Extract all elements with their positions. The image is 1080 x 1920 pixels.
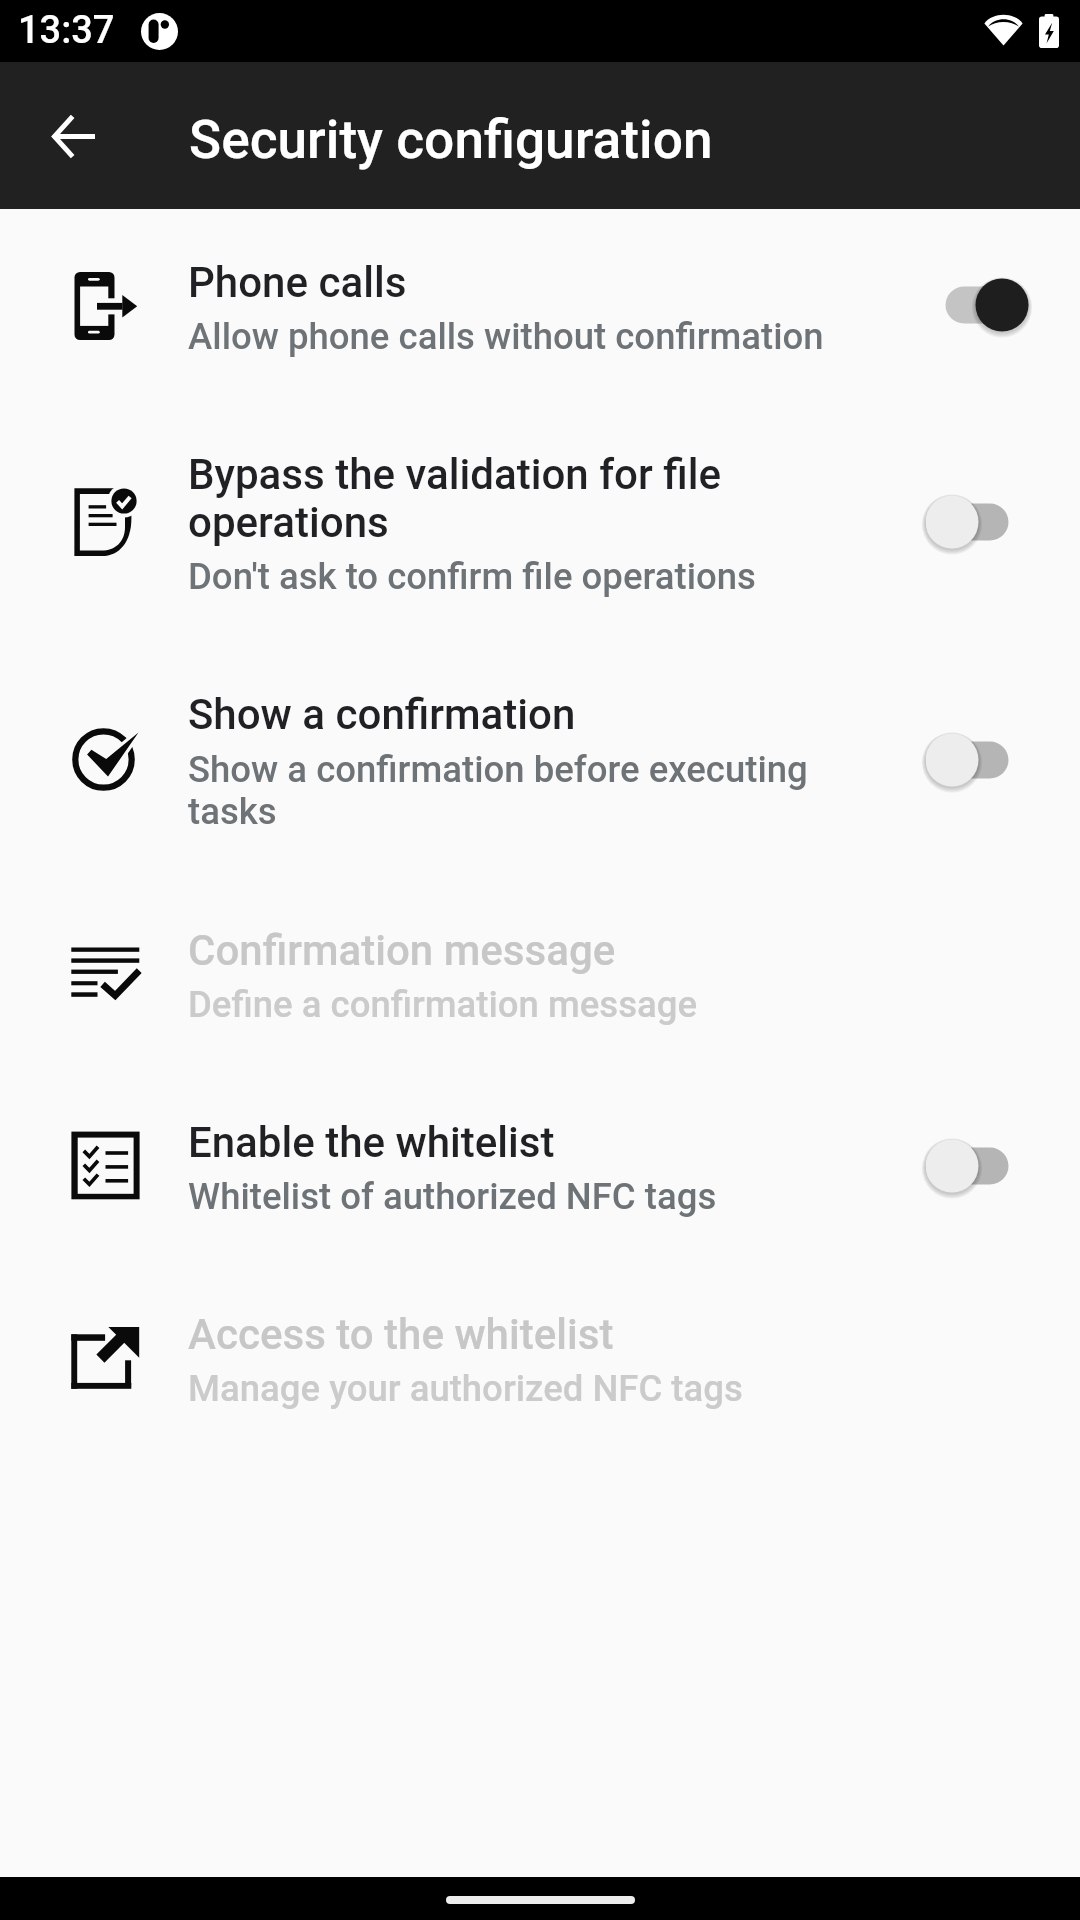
staticText: Access to the whitelist: [188, 1310, 614, 1359]
staticText: Show a confirmation: [188, 690, 576, 739]
staticText: Security configuration: [189, 109, 713, 171]
button[interactable]: Phone calls: [0, 209, 1080, 402]
button[interactable]: Enable the whitelist: [0, 1066, 1080, 1257]
staticText: Confirmation message: [188, 926, 616, 975]
staticText: Allow phone calls without confirmation: [188, 315, 824, 358]
staticText: Phone calls: [188, 258, 407, 307]
button[interactable]: On: [909, 260, 1045, 350]
staticText: Manage your authorized NFC tags: [188, 1367, 743, 1410]
button[interactable]: Access to the whitelist: [0, 1257, 1080, 1448]
staticText: Don't ask to confirm file operations: [188, 555, 756, 598]
staticText: 13:37: [18, 8, 115, 53]
button[interactable]: Show a confirmation: [0, 641, 1080, 876]
staticText: Whitelist of authorized NFC tags: [188, 1175, 717, 1218]
button[interactable]: Back: [29, 92, 117, 180]
staticText: Enable the whitelist: [188, 1118, 555, 1167]
staticText: Bypass the validation for file: [188, 450, 721, 499]
button[interactable]: Off: [909, 1121, 1045, 1211]
button[interactable]: Off: [909, 477, 1045, 567]
button[interactable]: Confirmation message: [0, 876, 1080, 1066]
staticText: tasks: [188, 790, 277, 833]
staticText: Show a confirmation before executing: [188, 748, 808, 791]
button[interactable]: Bypass the validation for file: [0, 402, 1080, 641]
staticText: Define a confirmation message: [188, 983, 698, 1026]
staticText: operations: [188, 498, 389, 547]
button[interactable]: Off: [909, 715, 1045, 805]
